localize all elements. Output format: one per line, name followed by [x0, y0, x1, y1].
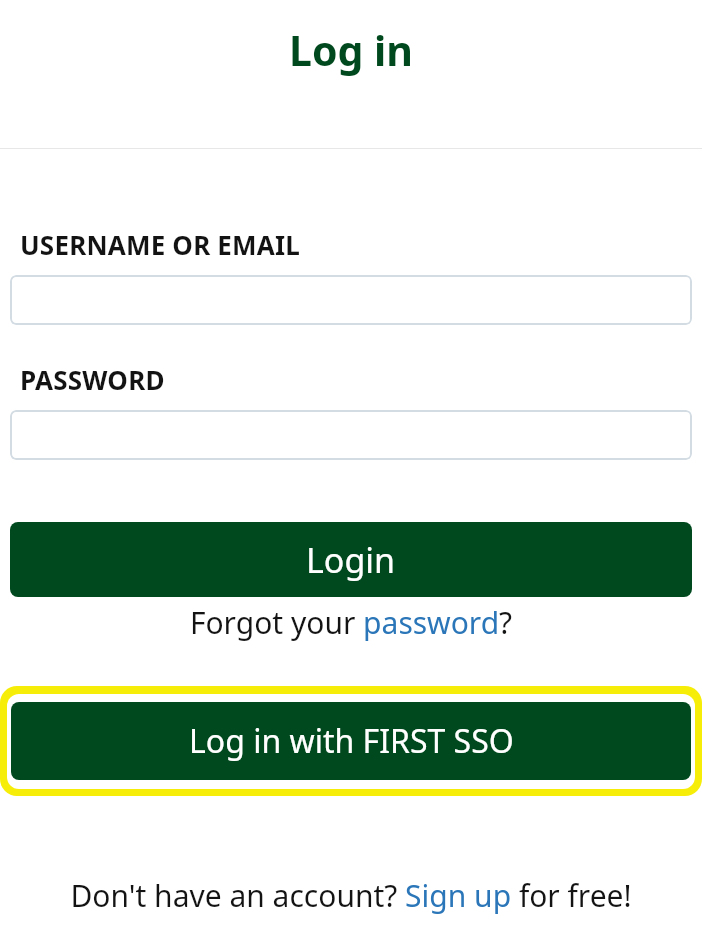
button[interactable]: [10, 275, 692, 325]
button[interactable]: Don't have an account? Sign up for free!: [0, 875, 702, 916]
staticText: PASSWORD: [20, 362, 165, 397]
button[interactable]: [10, 410, 692, 460]
button[interactable]: Login: [10, 522, 692, 597]
button[interactable]: Forgot your password?: [0, 602, 702, 643]
staticText: Log in with FIRST SSO: [189, 719, 514, 763]
staticText: USERNAME OR EMAIL: [20, 227, 301, 262]
staticText: Log in: [0, 22, 702, 78]
staticText: Login: [306, 537, 396, 583]
button[interactable]: Log in with FIRST SSO: [0, 686, 702, 796]
